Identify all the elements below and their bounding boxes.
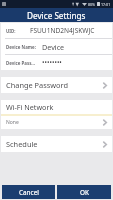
button[interactable]: OK	[57, 185, 111, 199]
staticText: Wi-Fi Network	[6, 102, 54, 112]
other: Open	[103, 141, 107, 148]
button[interactable]: Cancel	[2, 185, 55, 199]
staticText: Cancel	[19, 188, 39, 197]
button[interactable]: Wi-Fi Network	[1, 100, 112, 114]
staticText: FSUU1ND2N4JSKWJC	[30, 26, 95, 35]
button[interactable]: None	[1, 116, 112, 129]
staticText: Device Pass...	[6, 60, 36, 66]
staticText: 17:01	[101, 2, 111, 7]
staticText: UID:	[6, 28, 16, 34]
staticText: 80%	[88, 2, 96, 7]
button[interactable]: Device Pass...	[1, 55, 112, 70]
staticText: Device	[42, 42, 65, 52]
staticText: OK	[80, 188, 89, 197]
staticText: Device Settings	[27, 10, 86, 21]
other: Open	[103, 119, 107, 126]
other: Open	[103, 82, 107, 89]
staticText: Device Name:	[6, 44, 36, 50]
button[interactable]: Schedule	[1, 136, 112, 152]
button[interactable]: Change Password	[1, 77, 112, 93]
staticText: None	[6, 119, 19, 126]
button[interactable]: UID:	[1, 23, 112, 38]
staticText: Change Password	[6, 80, 69, 90]
button[interactable]: Device Name:	[1, 39, 112, 54]
staticText: ••••••••	[42, 58, 62, 67]
staticText: Schedule	[6, 139, 38, 149]
